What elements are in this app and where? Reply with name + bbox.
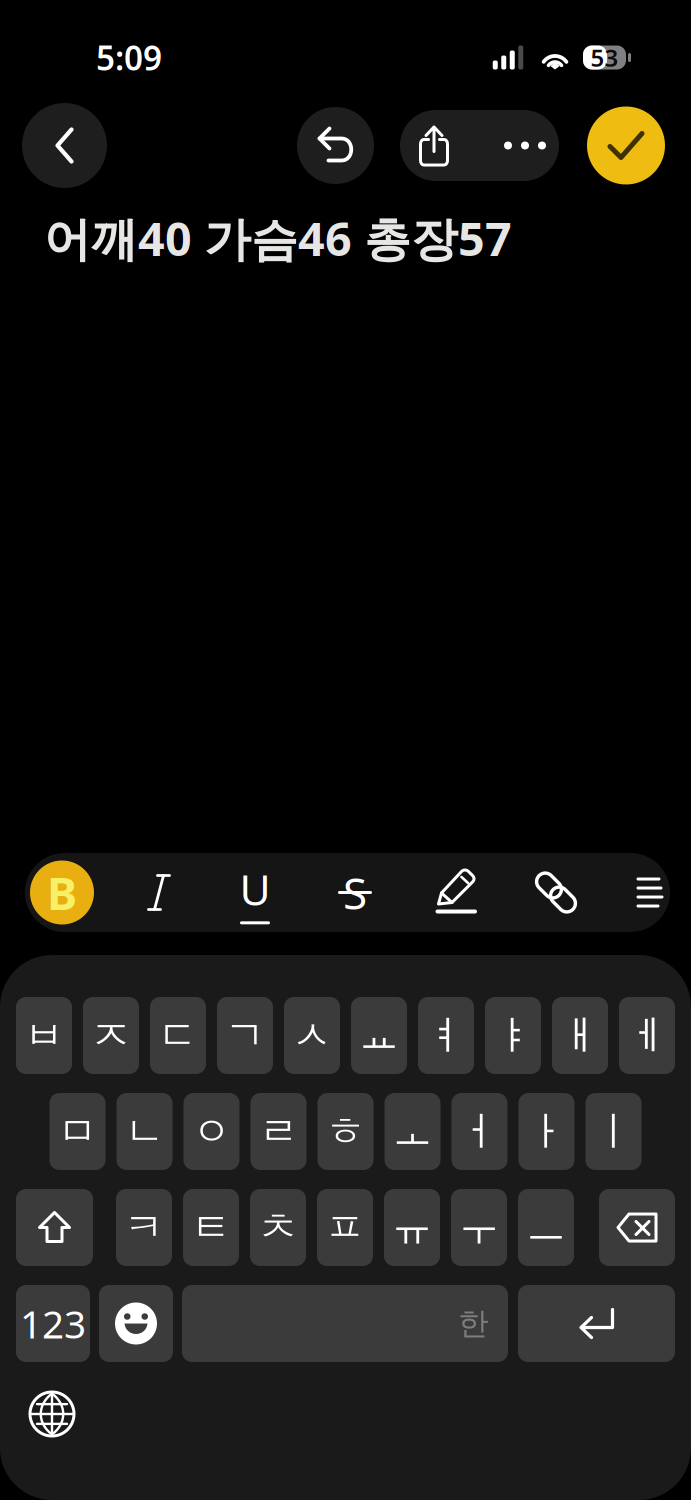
staticText: ㅑ xyxy=(493,1011,533,1060)
staticText: S xyxy=(343,863,367,922)
staticText: ㅅ xyxy=(292,1011,332,1060)
button[interactable]: Done xyxy=(587,106,665,184)
staticText: ㅇ xyxy=(191,1107,231,1156)
staticText: U xyxy=(239,861,270,917)
button[interactable]: Back xyxy=(22,103,107,188)
staticText: ㅍ xyxy=(325,1203,365,1252)
button[interactable]: Emoji xyxy=(99,1285,173,1362)
staticText: ㅎ xyxy=(325,1107,365,1156)
button[interactable]: ㅍ xyxy=(317,1189,373,1266)
button[interactable]: ㅋ xyxy=(116,1189,172,1266)
staticText: ㄹ xyxy=(258,1107,298,1156)
staticText: ㄴ xyxy=(124,1107,164,1156)
button[interactable]: Space xyxy=(182,1285,508,1362)
staticText: 어깨40 가슴46 총장57 xyxy=(44,207,512,269)
staticText: ㅡ xyxy=(526,1203,566,1252)
staticText: 123 xyxy=(20,1298,86,1349)
staticText: ㅌ xyxy=(191,1203,231,1252)
button[interactable]: Insert link xyxy=(519,853,593,932)
staticText: ㅜ xyxy=(459,1203,499,1252)
staticText: ㅔ xyxy=(627,1011,667,1060)
staticText: 5:09 xyxy=(96,35,162,80)
staticText: ㅁ xyxy=(57,1107,97,1156)
button[interactable]: ㄱ xyxy=(217,997,273,1074)
button[interactable]: ㅕ xyxy=(418,997,474,1074)
button[interactable]: ㅅ xyxy=(284,997,340,1074)
staticText: ㅐ xyxy=(560,1011,600,1060)
button[interactable]: Strikethrough xyxy=(318,853,392,932)
staticText: ㅈ xyxy=(91,1011,131,1060)
staticText: ㅕ xyxy=(426,1011,466,1060)
button[interactable]: ㅎ xyxy=(317,1093,373,1170)
button[interactable]: ㅂ xyxy=(16,997,72,1074)
button[interactable]: ㅜ xyxy=(451,1189,507,1266)
button[interactable]: ㅡ xyxy=(518,1189,574,1266)
button[interactable]: ㅊ xyxy=(250,1189,306,1266)
staticText: 한 xyxy=(458,1305,489,1342)
button[interactable]: ㅇ xyxy=(183,1093,239,1170)
button[interactable]: Next keyboard xyxy=(23,1385,81,1443)
staticText: ㅏ xyxy=(526,1107,566,1156)
button[interactable]: ㅠ xyxy=(384,1189,440,1266)
staticText: ㅊ xyxy=(258,1203,298,1252)
button[interactable]: More options xyxy=(491,110,559,181)
button[interactable]: Undo xyxy=(297,107,374,184)
staticText: ㅋ xyxy=(124,1203,164,1252)
button[interactable]: Share xyxy=(400,110,468,181)
staticText: ㅓ xyxy=(459,1107,499,1156)
button[interactable]: ㅓ xyxy=(451,1093,507,1170)
button[interactable]: ㅐ xyxy=(552,997,608,1074)
button[interactable]: Return xyxy=(518,1285,675,1362)
button[interactable]: Alignment xyxy=(613,853,687,932)
button[interactable]: ㄷ xyxy=(150,997,206,1074)
button[interactable]: ㅏ xyxy=(518,1093,574,1170)
button[interactable]: ㅗ xyxy=(384,1093,440,1170)
button[interactable]: Highlight xyxy=(420,853,494,932)
staticText: ㄱ xyxy=(225,1011,265,1060)
button[interactable]: Underline xyxy=(218,853,292,932)
staticText: ㅛ xyxy=(359,1011,399,1060)
button[interactable]: ㄴ xyxy=(116,1093,172,1170)
button[interactable]: Italic xyxy=(122,853,196,932)
button[interactable]: ㄹ xyxy=(250,1093,306,1170)
button[interactable]: Backspace xyxy=(599,1189,675,1266)
staticText: ㅂ xyxy=(24,1011,64,1060)
button[interactable]: Numbers and symbols xyxy=(16,1285,90,1362)
staticText: ㅠ xyxy=(392,1203,432,1252)
button[interactable]: ㅑ xyxy=(485,997,541,1074)
button[interactable]: ㅣ xyxy=(585,1093,641,1170)
button[interactable]: ㅈ xyxy=(83,997,139,1074)
button[interactable]: ㅛ xyxy=(351,997,407,1074)
button[interactable]: ㅁ xyxy=(49,1093,105,1170)
button[interactable]: Shift xyxy=(16,1189,93,1266)
staticText: ㅣ xyxy=(593,1107,633,1156)
button[interactable]: ㅌ xyxy=(183,1189,239,1266)
staticText: ㅗ xyxy=(392,1107,432,1156)
staticText: B xyxy=(47,862,77,923)
staticText: ㄷ xyxy=(158,1011,198,1060)
staticText: 53 xyxy=(590,42,618,73)
button[interactable]: Bold xyxy=(25,853,99,932)
button[interactable]: ㅔ xyxy=(619,997,675,1074)
